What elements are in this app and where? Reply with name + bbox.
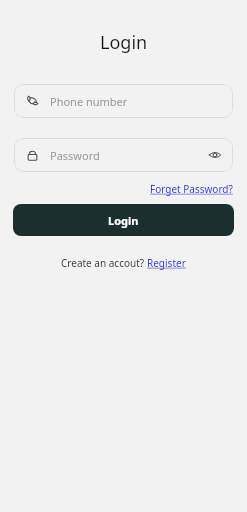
- staticText: Login: [100, 30, 148, 55]
- button[interactable]: Password: [14, 138, 233, 172]
- staticText: Password: [50, 148, 206, 163]
- staticText: Phone number: [50, 94, 128, 109]
- button[interactable]: Show password: [206, 146, 224, 164]
- staticText: Create an accout?: [61, 256, 147, 270]
- staticText: Forget Password?: [150, 182, 233, 196]
- button[interactable]: Forget Password?: [150, 182, 233, 196]
- button[interactable]: Register: [147, 256, 186, 270]
- staticText: Login: [108, 213, 139, 228]
- button[interactable]: Phone number: [14, 84, 233, 118]
- staticText: Register: [147, 256, 186, 270]
- button[interactable]: Login: [13, 204, 234, 236]
